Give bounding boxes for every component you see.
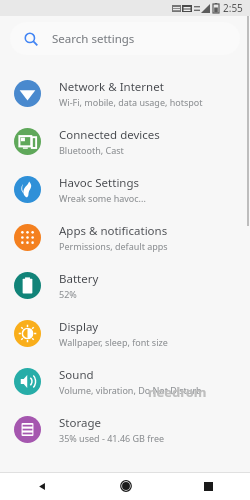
- button[interactable]: Search settings: [10, 22, 240, 55]
- staticText: Storage: [59, 415, 101, 431]
- button[interactable]: Recents: [167, 472, 250, 500]
- staticText: Battery: [59, 271, 99, 287]
- staticText: Display: [59, 319, 99, 335]
- staticText: Havoc Settings: [59, 175, 140, 191]
- staticText: Network & Internet: [59, 79, 164, 95]
- button[interactable]: Back: [0, 472, 84, 500]
- staticText: Wi-Fi, mobile, data usage, hotspot: [59, 96, 203, 108]
- button[interactable]: Havoc Settings: [0, 165, 250, 213]
- staticText: Wallpaper, sleep, font size: [59, 336, 168, 348]
- button[interactable]: Network & Internet: [0, 69, 250, 117]
- staticText: 35% used - 41.46 GB free: [59, 432, 165, 444]
- staticText: 52%: [59, 288, 77, 300]
- button[interactable]: Home: [84, 472, 167, 500]
- staticText: Sound: [59, 367, 94, 383]
- staticText: 2:55: [223, 1, 243, 15]
- staticText: Wreak some havoc...: [59, 192, 146, 204]
- button[interactable]: Battery: [0, 261, 250, 309]
- staticText: needrom: [148, 383, 207, 401]
- staticText: Bluetooth, Cast: [59, 144, 124, 156]
- button[interactable]: Display: [0, 309, 250, 357]
- staticText: Apps & notifications: [59, 223, 168, 239]
- staticText: Volume, vibration, Do Not Disturb: [59, 384, 202, 396]
- staticText: Permissions, default apps: [59, 240, 168, 252]
- button[interactable]: Apps & notifications: [0, 213, 250, 261]
- staticText: Connected devices: [59, 127, 160, 143]
- button[interactable]: Connected devices: [0, 117, 250, 165]
- staticText: Search settings: [52, 31, 135, 47]
- button[interactable]: Storage: [0, 405, 250, 453]
- button[interactable]: Sound: [0, 357, 250, 405]
